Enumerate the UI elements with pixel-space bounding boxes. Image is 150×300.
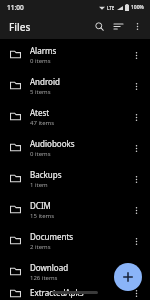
button[interactable]: Create new <box>114 263 142 291</box>
button[interactable]: Atest <box>0 101 150 132</box>
staticText: 126 items <box>30 274 58 282</box>
staticText: ExtractedApks <box>30 287 84 298</box>
staticText: Documents <box>30 231 74 242</box>
button[interactable]: More options for Atest <box>126 107 146 127</box>
button[interactable]: Search <box>90 17 109 36</box>
button[interactable]: More options <box>128 17 147 36</box>
button[interactable]: More options for ExtractedApks <box>126 287 146 300</box>
staticText: Files <box>9 20 31 34</box>
button[interactable]: More options for DCIM <box>126 200 146 220</box>
staticText: 11:00 <box>7 3 24 12</box>
staticText: 5 items <box>30 88 51 96</box>
staticText: 0 items <box>30 57 51 65</box>
button[interactable]: More options for Backups <box>126 169 146 189</box>
button[interactable]: More options for Audiobooks <box>126 138 146 158</box>
button[interactable]: Alarms <box>0 39 150 70</box>
button[interactable]: Download <box>0 256 150 287</box>
staticText: LTE <box>107 5 115 11</box>
button[interactable]: Audiobooks <box>0 132 150 163</box>
button[interactable]: ExtractedApks <box>0 287 150 300</box>
button[interactable]: DCIM <box>0 194 150 225</box>
button[interactable]: Documents <box>0 225 150 256</box>
staticText: 2 items <box>30 243 51 251</box>
staticText: 47 items <box>30 119 55 127</box>
staticText: Download <box>30 262 69 273</box>
button[interactable]: More options for Documents <box>126 231 146 251</box>
staticText: Android <box>30 76 60 87</box>
button[interactable]: Sort <box>109 17 128 36</box>
staticText: Atest <box>30 107 50 118</box>
staticText: DCIM <box>30 200 51 211</box>
button[interactable]: More options for Alarms <box>126 45 146 65</box>
button[interactable]: Android <box>0 70 150 101</box>
staticText: Audiobooks <box>30 138 75 149</box>
button[interactable]: Backups <box>0 163 150 194</box>
staticText: 1 item <box>30 181 48 189</box>
staticText: 0 items <box>30 150 51 158</box>
button[interactable]: More options for Android <box>126 76 146 96</box>
staticText: 15 items <box>30 212 55 220</box>
staticText: Backups <box>30 169 62 180</box>
button[interactable]: More options for Download <box>126 262 146 282</box>
staticText: Alarms <box>30 45 57 56</box>
staticText: 100% <box>131 4 144 11</box>
